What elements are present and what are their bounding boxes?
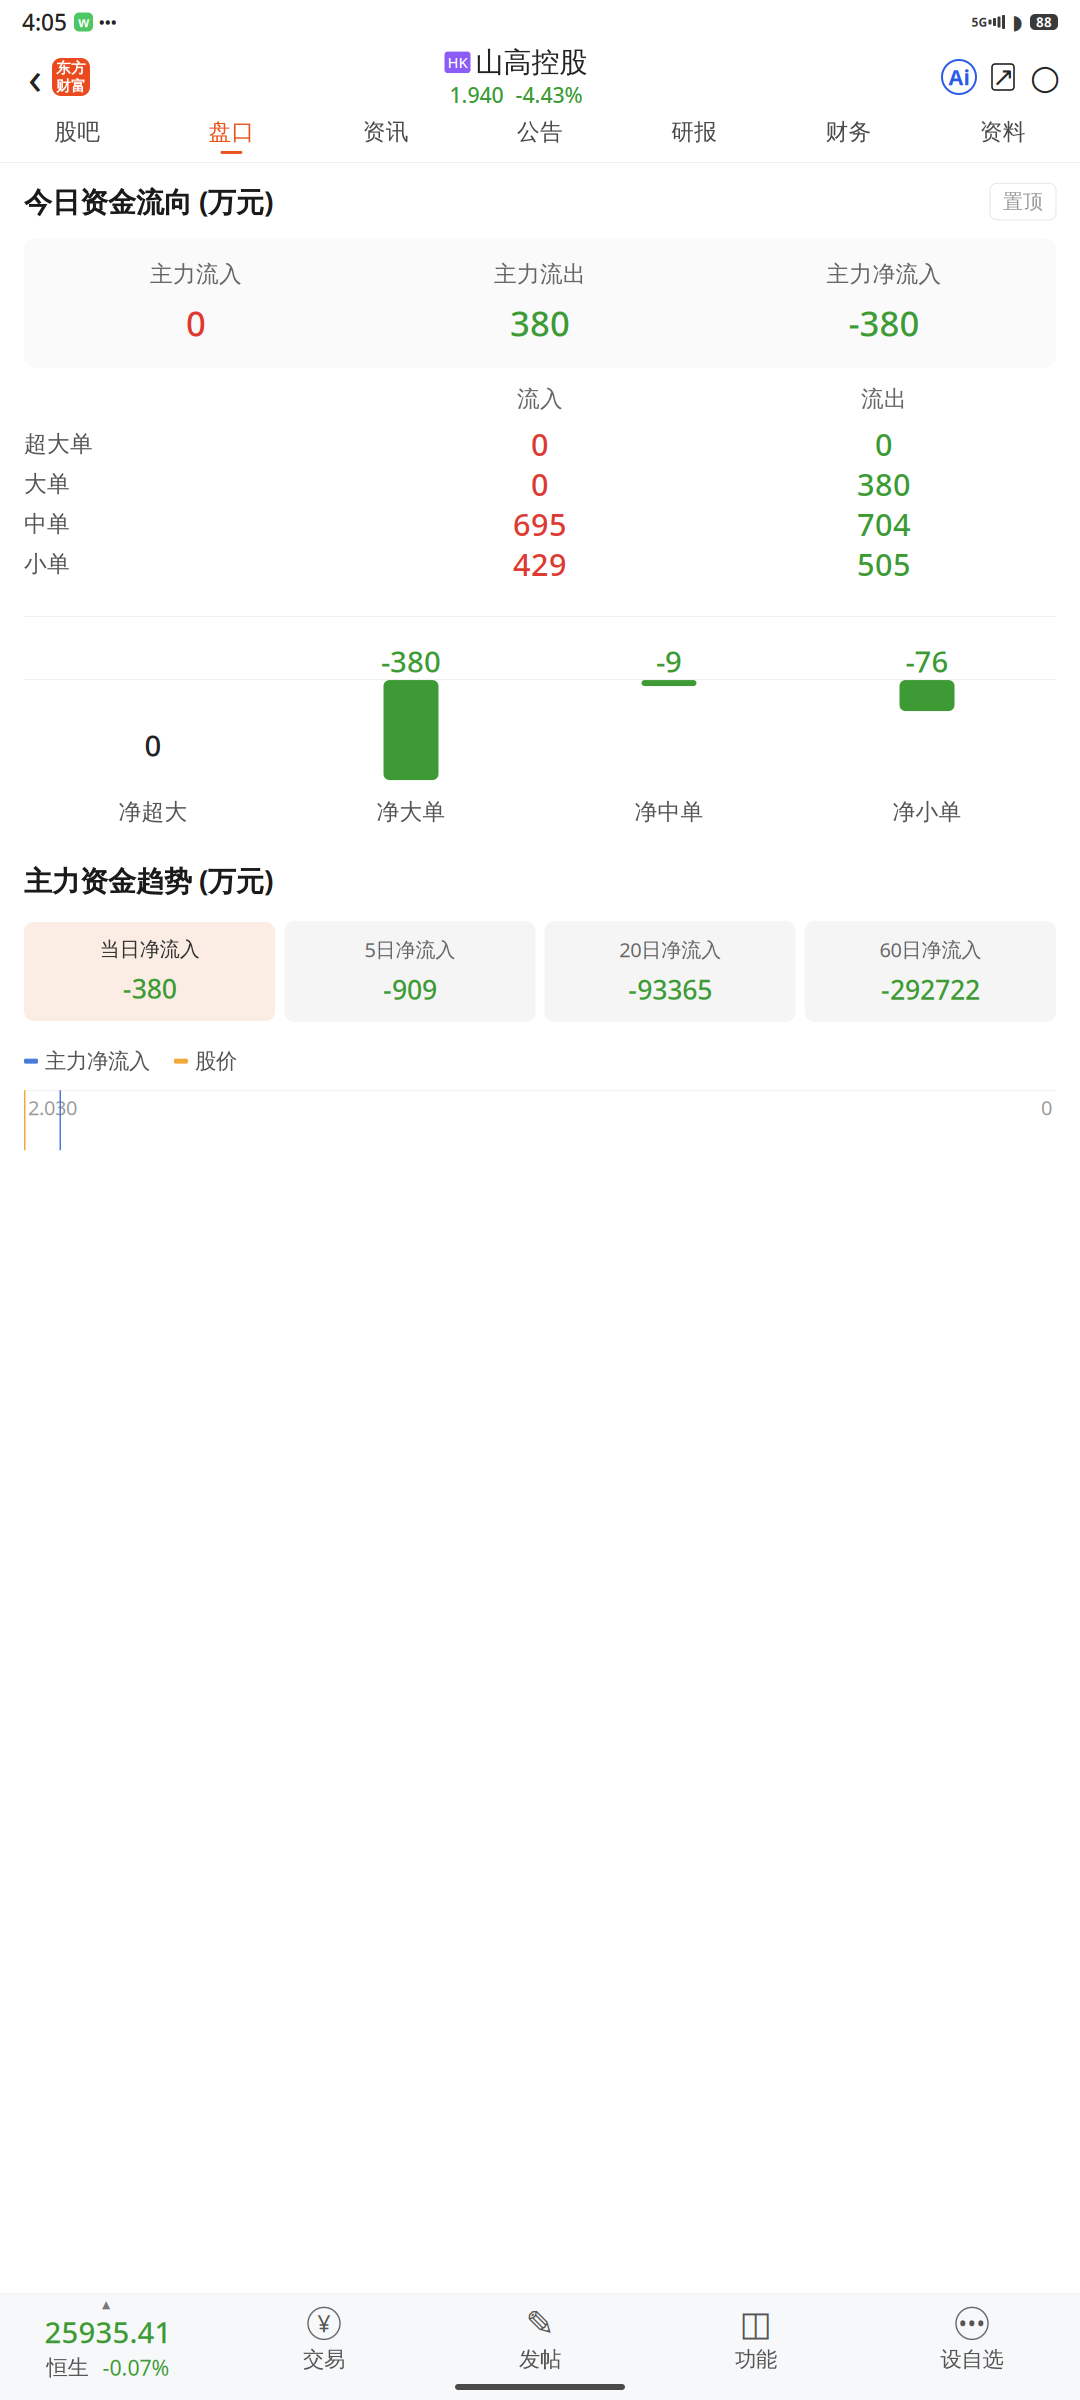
staticText: 0 (1041, 1094, 1052, 1121)
staticText: 净小单 (892, 798, 961, 826)
staticText: 429 (513, 544, 567, 584)
staticText: 主力资金趋势 (万元) (24, 862, 273, 899)
staticText: -4.43% (515, 80, 582, 109)
staticText: ▲ (102, 2298, 110, 2310)
staticText: 0 (144, 726, 161, 765)
staticText: -76 (905, 642, 948, 681)
button[interactable]: 20日净流入 (544, 921, 796, 1022)
staticText: -93365 (628, 972, 712, 1007)
staticText: 主力净流入 (826, 260, 941, 288)
staticText: 大单 (24, 470, 70, 498)
staticText: 380 (857, 464, 911, 504)
staticText: 盘口 (208, 118, 254, 146)
staticText: 60日净流入 (879, 936, 981, 963)
staticText: HK (447, 53, 467, 72)
staticText: -909 (383, 972, 437, 1007)
staticText: 4:05 (22, 7, 67, 37)
staticText: 中单 (24, 510, 70, 538)
staticText: w (78, 13, 89, 31)
button[interactable]: 盘口 (154, 110, 309, 162)
staticText: ○ (1030, 57, 1060, 97)
staticText: ‹ (28, 47, 42, 107)
staticText: 20日净流入 (619, 936, 721, 963)
staticText: -380 (123, 971, 177, 1006)
staticText: 净大单 (376, 798, 445, 826)
staticText: ◫ (739, 2304, 772, 2343)
staticText: -9 (656, 642, 682, 681)
button[interactable]: 公告 (463, 110, 617, 162)
button[interactable]: Hang Seng index (0, 2298, 216, 2382)
staticText: 5G (971, 14, 987, 30)
staticText: 主力流入 (150, 260, 242, 288)
staticText: 置顶 (1003, 189, 1043, 214)
staticText: 小单 (24, 550, 70, 578)
staticText: 山高控股 (475, 45, 587, 79)
staticText: 东方 (56, 59, 86, 77)
staticText: ✎ (525, 2304, 554, 2343)
staticText: 恒生 (46, 2354, 88, 2381)
button[interactable]: 5日净流入 (284, 921, 535, 1022)
staticText: ◗ (1012, 11, 1023, 33)
staticText: 股吧 (54, 118, 100, 146)
staticText: -0.07% (102, 2353, 169, 2382)
staticText: 1.940 (449, 80, 503, 109)
staticText: 当日净流入 (100, 937, 200, 962)
button[interactable]: 资讯 (309, 110, 463, 162)
staticText: 0 (531, 464, 549, 504)
staticText: 功能 (735, 2346, 777, 2373)
button[interactable]: 资料 (926, 110, 1080, 162)
button[interactable]: 当日净流入 (24, 922, 275, 1021)
staticText: 流入 (517, 385, 563, 413)
staticText: 交易 (303, 2346, 345, 2373)
button[interactable]: 财务 (771, 110, 926, 162)
staticText: 流出 (861, 385, 907, 413)
staticText: 净中单 (634, 798, 703, 826)
staticText: ¥ (317, 2308, 330, 2338)
staticText: 0 (531, 424, 549, 464)
staticText: 25935.41 (44, 2312, 171, 2351)
staticText: 主力净流入 (45, 1048, 150, 1074)
staticText: 超大单 (24, 430, 93, 458)
staticText: 380 (510, 300, 570, 346)
button[interactable]: 置顶 (990, 183, 1056, 220)
button[interactable]: ••• (864, 2307, 1080, 2373)
staticText: 0 (875, 424, 893, 464)
staticText: 设自选 (940, 2346, 1003, 2373)
staticText: 研报 (671, 118, 717, 146)
staticText: 505 (857, 544, 911, 584)
button[interactable]: ◫ (648, 2307, 864, 2373)
staticText: 公告 (517, 118, 563, 146)
staticText: 2.030 (28, 1094, 77, 1121)
staticText: 695 (513, 504, 567, 544)
staticText: 股价 (195, 1048, 237, 1074)
staticText: -380 (381, 642, 441, 681)
button[interactable]: 60日净流入 (805, 921, 1056, 1022)
staticText: 5日净流入 (364, 936, 455, 963)
staticText: 净超大 (118, 798, 187, 826)
staticText: ••• (99, 12, 117, 32)
staticText: -380 (848, 300, 919, 346)
staticText: 88 (1036, 13, 1052, 31)
staticText: 0 (186, 300, 206, 346)
button[interactable]: Search (1028, 60, 1062, 94)
staticText: 财务 (826, 118, 872, 146)
button[interactable]: 股吧 (0, 110, 154, 162)
staticText: 资料 (980, 118, 1026, 146)
button[interactable]: Share (986, 60, 1020, 94)
button[interactable]: 研报 (617, 110, 771, 162)
button[interactable]: ¥ (216, 2307, 432, 2373)
button[interactable]: East Money home (52, 58, 90, 96)
staticText: -292722 (881, 972, 980, 1007)
staticText: 704 (857, 504, 911, 544)
staticText: 资讯 (363, 118, 409, 146)
button[interactable]: AI assistant (942, 60, 976, 94)
button[interactable]: ✎ (432, 2307, 648, 2373)
staticText: 发帖 (519, 2346, 561, 2373)
staticText: 今日资金流向 (万元) (24, 183, 273, 220)
staticText: ↗ (992, 62, 1014, 92)
staticText: 财富 (56, 77, 86, 95)
staticText: Ai (948, 63, 969, 91)
button[interactable]: Back (18, 55, 52, 99)
staticText: ••• (958, 2308, 985, 2338)
staticText: 主力流出 (494, 260, 586, 288)
